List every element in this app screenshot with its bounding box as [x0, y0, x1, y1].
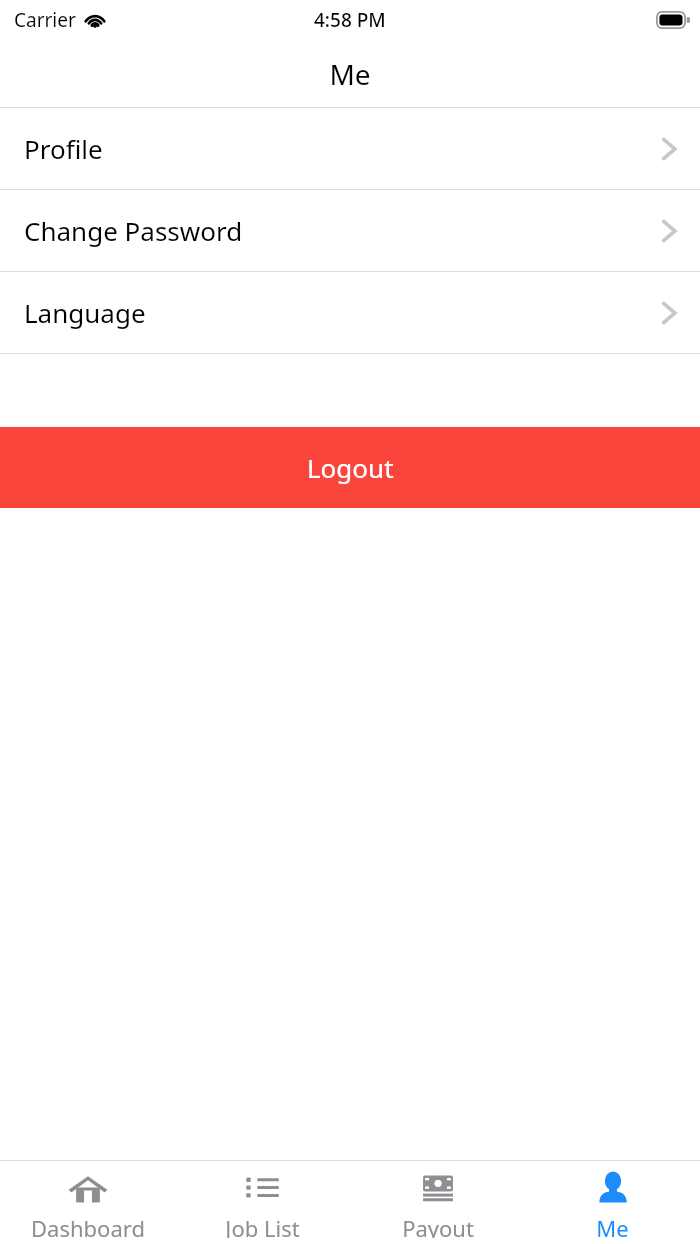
staticText: Profile — [24, 131, 103, 166]
staticText: Change Password — [24, 213, 243, 248]
other: Payout — [416, 1169, 460, 1209]
button[interactable]: Me — [525, 1161, 700, 1244]
staticText: Me — [329, 55, 371, 93]
staticText: Me — [596, 1213, 629, 1238]
staticText: Dashboard — [31, 1213, 145, 1238]
staticText: Carrier — [14, 7, 76, 33]
other: Me — [591, 1169, 635, 1209]
other: Job List — [241, 1169, 285, 1209]
staticText: 4:58 PM — [314, 7, 386, 33]
button[interactable]: Profile — [0, 108, 700, 189]
other: Dashboard — [66, 1169, 110, 1209]
button[interactable]: Language — [0, 272, 700, 353]
staticText: Job List — [225, 1213, 300, 1238]
staticText: Logout — [307, 450, 394, 485]
button[interactable]: Payout — [350, 1161, 525, 1244]
button[interactable]: Dashboard — [0, 1161, 175, 1244]
button[interactable]: Job List — [175, 1161, 350, 1244]
button[interactable]: Change Password — [0, 190, 700, 271]
staticText: Language — [24, 295, 146, 330]
button[interactable]: Logout — [0, 427, 700, 508]
staticText: Payout — [402, 1213, 474, 1238]
